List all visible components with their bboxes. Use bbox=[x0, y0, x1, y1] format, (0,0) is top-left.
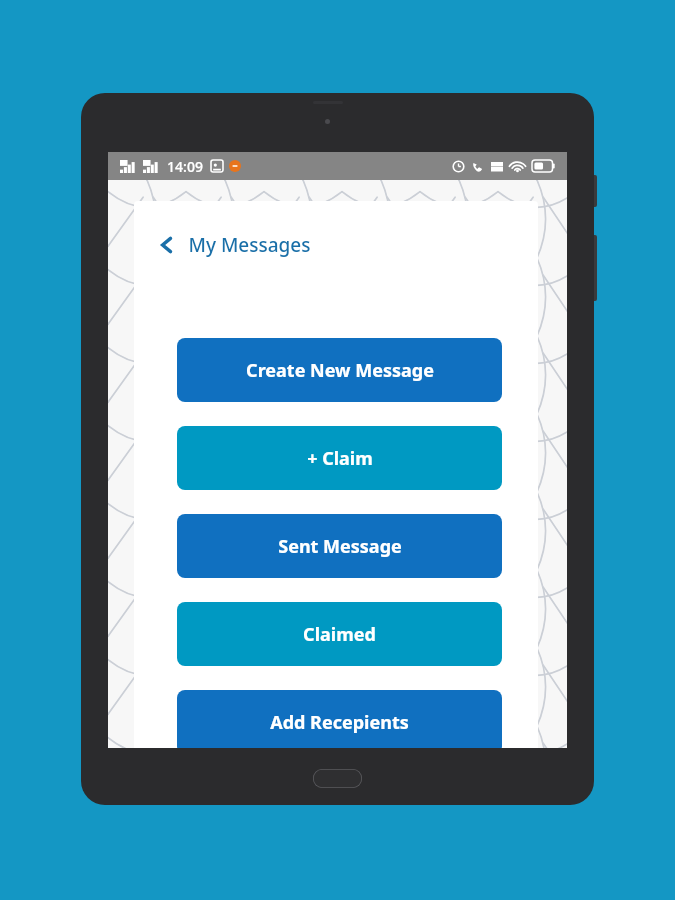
staticText: 14:09 bbox=[167, 157, 203, 176]
staticText: + Claim bbox=[307, 446, 373, 471]
button[interactable]: + Claim bbox=[177, 426, 502, 490]
button[interactable]: Create New Message bbox=[177, 338, 502, 402]
button[interactable]: Back bbox=[156, 225, 311, 265]
staticText: Claimed bbox=[303, 622, 376, 647]
staticText: Add Recepients bbox=[270, 710, 409, 735]
other: Back bbox=[156, 234, 178, 256]
button[interactable]: Claimed bbox=[177, 602, 502, 666]
staticText: My Messages bbox=[188, 232, 311, 258]
button[interactable]: Sent Message bbox=[177, 514, 502, 578]
button[interactable]: Add Recepients bbox=[177, 690, 502, 748]
staticText: Create New Message bbox=[246, 358, 434, 383]
staticText: Sent Message bbox=[278, 534, 402, 559]
